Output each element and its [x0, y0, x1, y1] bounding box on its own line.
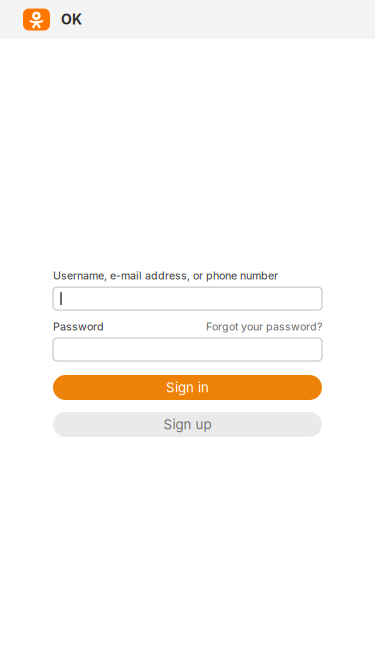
staticText: OK	[61, 11, 82, 28]
staticText: Sign up	[163, 416, 211, 432]
button[interactable]: Sign in	[53, 375, 322, 400]
button[interactable]: Forgot your password?	[206, 320, 322, 333]
staticText: Username, e-mail address, or phone numbe…	[53, 269, 278, 282]
staticText: Sign in	[166, 379, 209, 395]
staticText: Forgot your password?	[206, 320, 322, 333]
button[interactable]: Sign up	[53, 412, 322, 437]
button[interactable]: Username, e-mail address, or phone numbe…	[53, 287, 322, 310]
button[interactable]: Password	[53, 338, 322, 361]
button[interactable]: OK	[23, 8, 82, 30]
staticText: Password	[53, 320, 104, 333]
